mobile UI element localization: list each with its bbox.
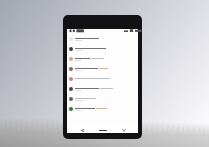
button[interactable] [67,76,138,86]
button[interactable] [67,96,138,106]
button[interactable] [67,36,138,46]
button[interactable] [67,46,138,56]
button[interactable] [67,66,138,76]
button[interactable] [67,56,138,66]
button[interactable] [67,86,138,96]
button[interactable]: Home [96,127,109,133]
button[interactable] [67,106,138,116]
button[interactable]: Back [77,127,87,133]
button[interactable]: Recents [119,127,129,133]
